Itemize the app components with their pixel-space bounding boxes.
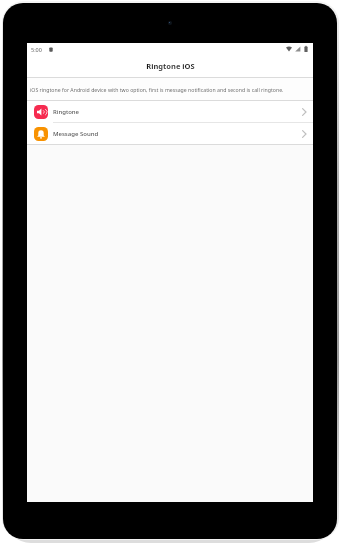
staticText: Ringtone iOS bbox=[146, 61, 195, 71]
staticText: Message Sound bbox=[53, 130, 99, 138]
button[interactable]: Ringtone bbox=[27, 101, 313, 122]
staticText: Ringtone bbox=[53, 108, 80, 116]
button[interactable]: Message Sound bbox=[27, 123, 313, 144]
staticText: iOS ringtone for Android device with two… bbox=[30, 86, 284, 93]
staticText: 5:00 bbox=[31, 46, 42, 53]
